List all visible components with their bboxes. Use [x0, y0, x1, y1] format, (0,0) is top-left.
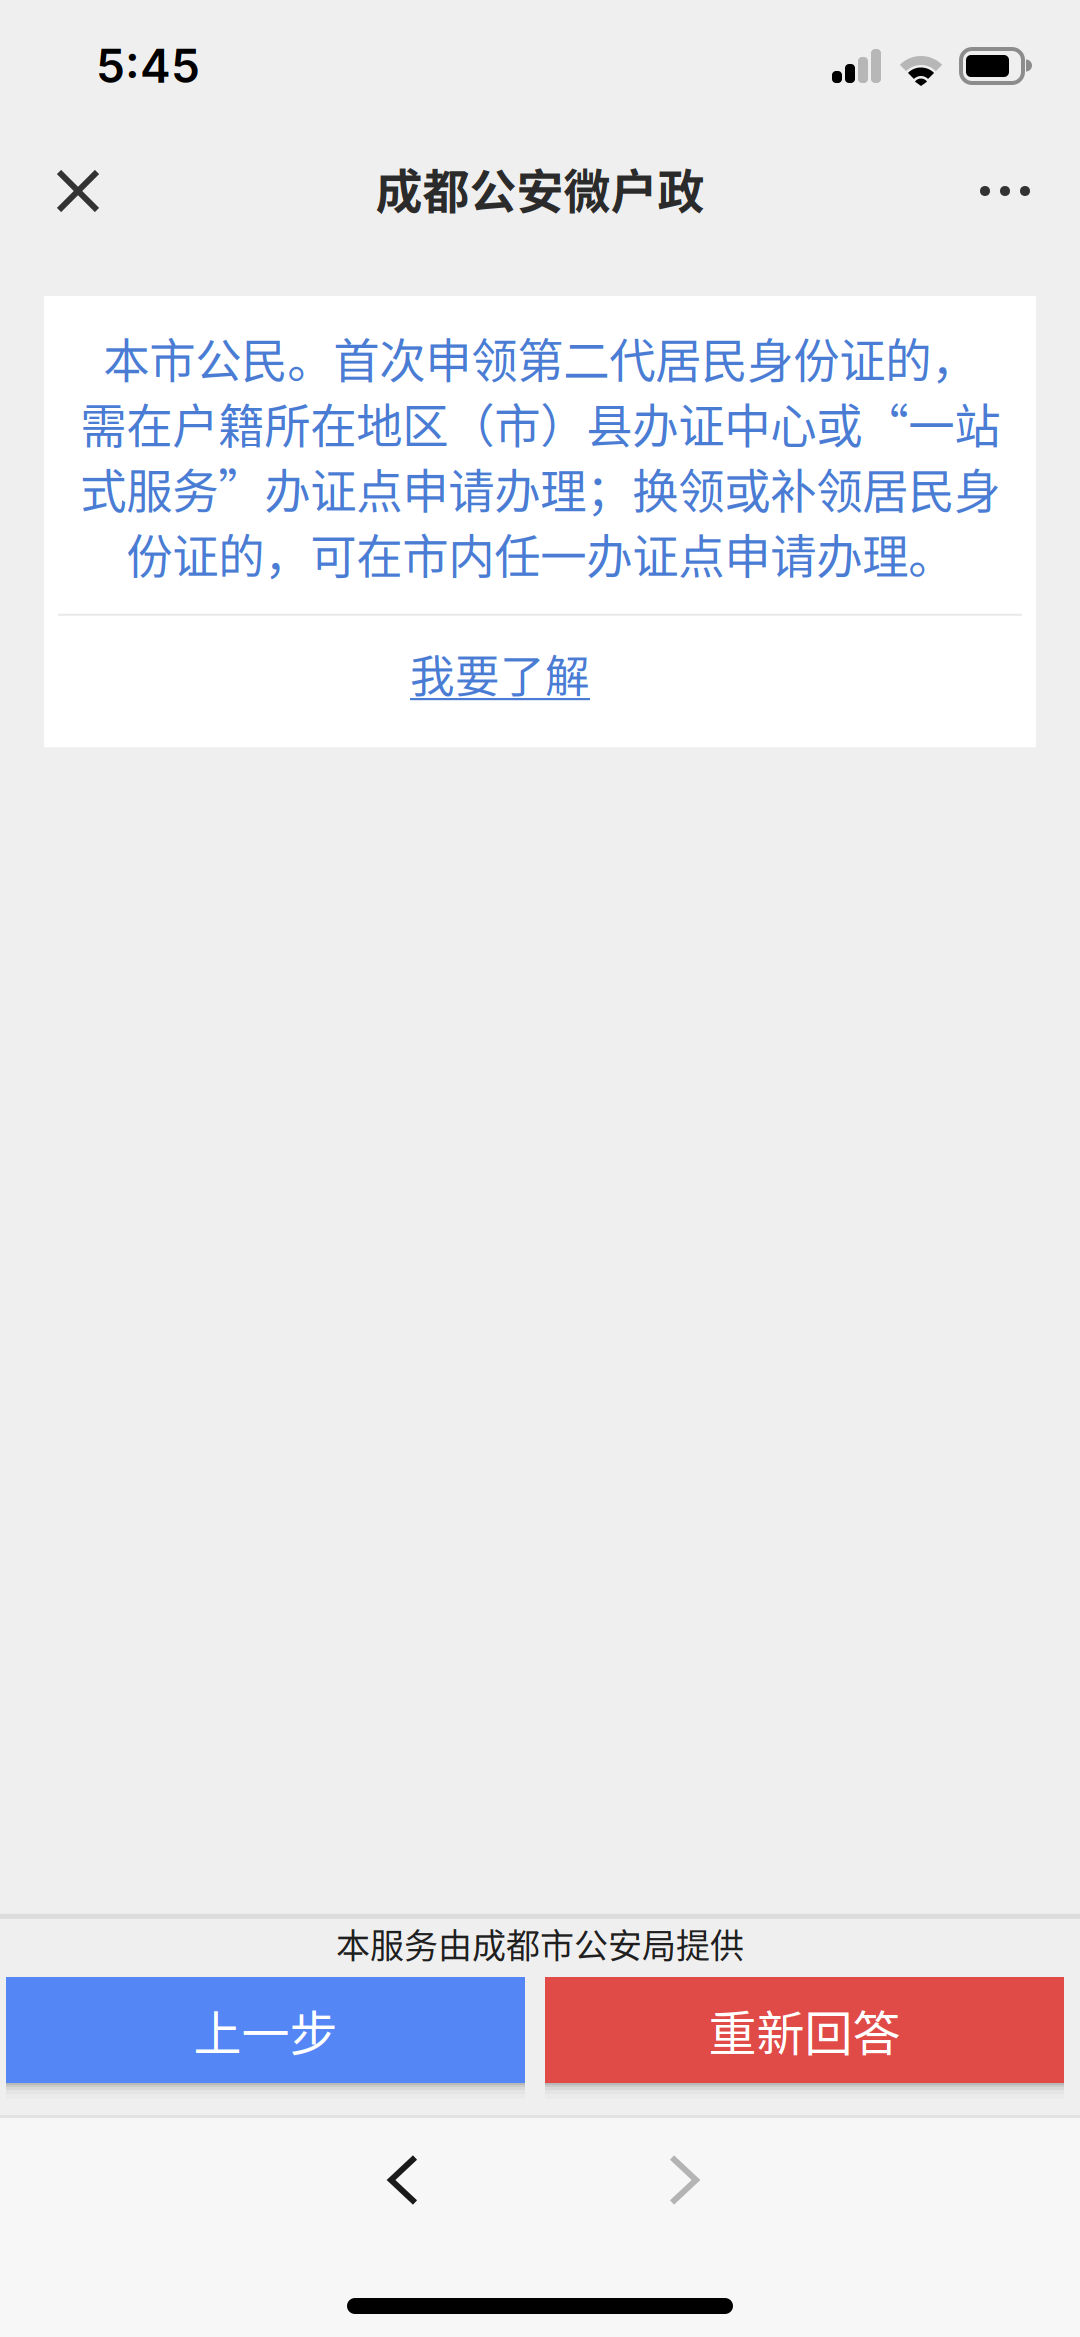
- button[interactable]: 重新回答: [545, 1977, 1064, 2099]
- staticText: 上一步: [193, 1995, 337, 2065]
- staticText: 本服务由成都市公安局提供: [336, 1919, 744, 1968]
- staticText: 本市公民。首次申领第二代居民身份证的， 需在户籍所在地区（市）县办证中心或“一站…: [80, 324, 1000, 587]
- button[interactable]: 更多: [947, 136, 1063, 240]
- button[interactable]: 前进: [604, 2125, 764, 2235]
- button[interactable]: 后退: [323, 2125, 483, 2235]
- staticText: 重新回答: [708, 1995, 900, 2065]
- button[interactable]: 上一步: [6, 1977, 525, 2099]
- staticText: 成都公安微户政: [375, 154, 704, 222]
- staticText: 5:45: [96, 38, 200, 94]
- button[interactable]: 我要了解: [44, 616, 1036, 747]
- staticText: 我要了解: [410, 641, 590, 705]
- button[interactable]: 关闭: [20, 136, 136, 240]
